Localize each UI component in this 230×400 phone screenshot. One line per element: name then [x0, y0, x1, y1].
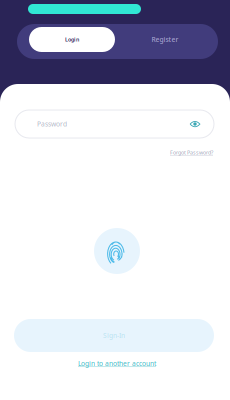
button[interactable]: Register [122, 27, 208, 52]
button[interactable]: Sign in with fingerprint [94, 228, 140, 274]
button[interactable]: Sign-In [14, 319, 214, 352]
staticText: Sign-In [103, 331, 125, 340]
staticText: Login to another account [78, 359, 156, 368]
button[interactable]: Forgot Password? [170, 149, 213, 156]
staticText: Password [37, 120, 67, 128]
button[interactable]: Show password [185, 114, 205, 134]
staticText: Register [151, 35, 178, 44]
button[interactable]: Login [29, 27, 115, 52]
staticText: Login [65, 36, 79, 43]
staticText: Forgot Password? [170, 149, 213, 156]
button[interactable]: Login to another account [78, 359, 156, 368]
